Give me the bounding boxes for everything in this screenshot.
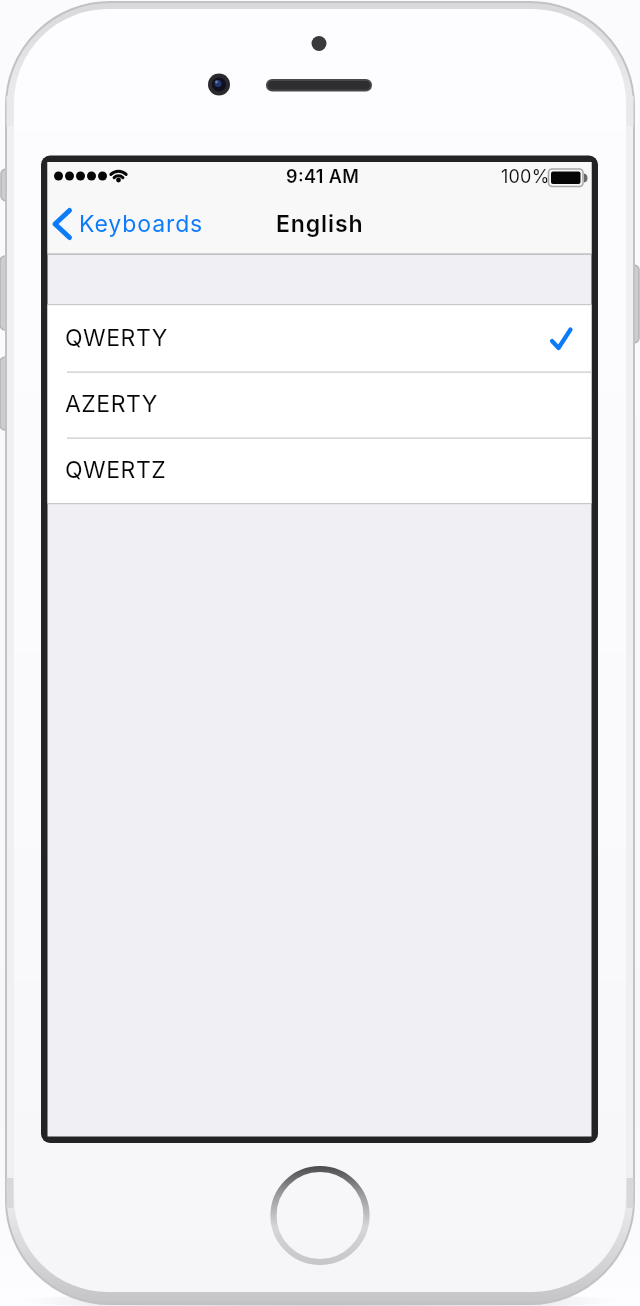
button[interactable]: AZERTY bbox=[48, 371, 591, 437]
button[interactable]: QWERTZ bbox=[48, 437, 591, 503]
staticText: 9:41 AM bbox=[286, 166, 360, 188]
staticText: AZERTY bbox=[65, 390, 158, 418]
button[interactable]: QWERTY bbox=[48, 305, 591, 371]
button[interactable]: Keyboards bbox=[50, 197, 220, 250]
staticText: QWERTY bbox=[65, 324, 168, 352]
staticText: English bbox=[276, 210, 364, 238]
staticText: Keyboards bbox=[79, 210, 204, 238]
staticText: 100% bbox=[501, 166, 550, 188]
staticText: QWERTZ bbox=[65, 456, 167, 484]
